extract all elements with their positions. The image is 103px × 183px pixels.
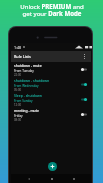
button[interactable]: Toggle rule xyxy=(79,110,88,119)
staticText: From Tuesday xyxy=(14,69,34,73)
staticText: Rule Lists xyxy=(14,54,31,59)
button[interactable]: shutdown - shutdown xyxy=(11,77,91,92)
button[interactable]: meeting - mute xyxy=(11,107,91,122)
button[interactable]: Toggle rule xyxy=(79,95,88,104)
button[interactable]: More options xyxy=(80,52,89,61)
button[interactable]: shutdown - mute xyxy=(11,62,91,77)
staticText: Unlock PREMIUM and get your Dark Mode xyxy=(20,2,84,17)
staticText: 12:00 xyxy=(14,103,22,107)
button[interactable]: Back xyxy=(23,174,34,183)
button[interactable]: Toggle rule xyxy=(79,65,88,74)
button[interactable]: Add rule xyxy=(48,162,57,171)
staticText: 22:00 xyxy=(14,73,22,77)
button[interactable]: Home xyxy=(46,174,57,183)
button[interactable]: Sleep - shutdown xyxy=(11,92,91,107)
staticText: 05:00 xyxy=(14,88,22,92)
staticText: From Sunday xyxy=(14,99,33,103)
staticText: Sleep - shutdown xyxy=(14,93,42,98)
staticText: shutdown - shutdown xyxy=(14,78,50,83)
button[interactable]: Recents xyxy=(68,174,79,183)
staticText: meeting - mute xyxy=(14,108,39,113)
staticText: shutdown - mute xyxy=(14,63,42,68)
staticText: 08:00 xyxy=(14,118,22,122)
staticText: Friday xyxy=(14,114,23,118)
staticText: 1:48 xyxy=(14,45,22,50)
button[interactable]: Toggle rule xyxy=(79,80,88,89)
staticText: From Wednesday xyxy=(14,84,39,88)
